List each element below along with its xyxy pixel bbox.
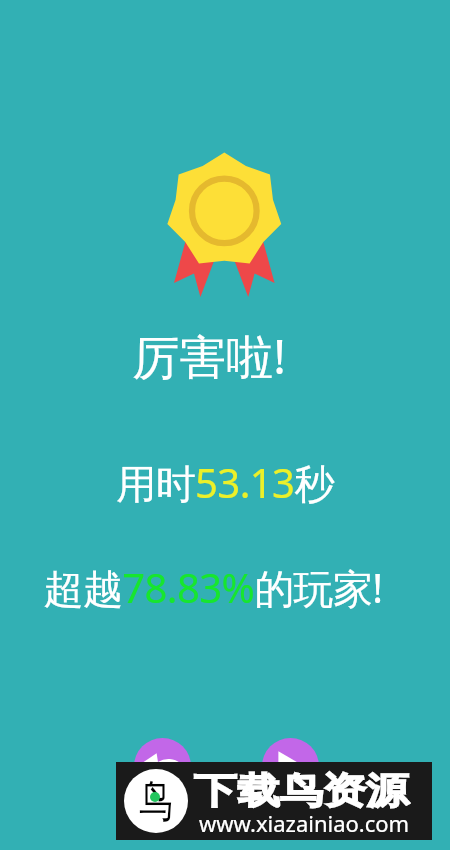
- button[interactable]: Next: [262, 738, 319, 795]
- staticText: 用时53.13秒: [116, 455, 334, 510]
- staticText: 厉害啦!: [132, 324, 286, 388]
- staticText: 鸟: [139, 774, 173, 829]
- staticText: 下载鸟资源: [194, 768, 409, 813]
- staticText: www.xiazainiao.com: [199, 808, 410, 838]
- button[interactable]: Replay: [134, 738, 191, 795]
- staticText: 超越78.83%的玩家!: [43, 560, 383, 615]
